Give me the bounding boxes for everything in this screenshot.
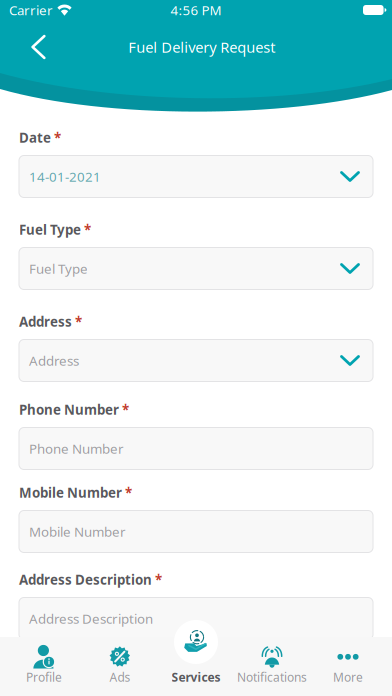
staticText: *: [54, 129, 61, 146]
button[interactable]: Ads: [82, 637, 158, 696]
staticText: Fuel Delivery Request: [128, 37, 275, 57]
staticText: Mobile Number: [19, 484, 122, 501]
staticText: 4:56 PM: [170, 1, 221, 19]
staticText: Phone Number: [29, 440, 124, 457]
button[interactable]: Address Description: [19, 597, 373, 639]
button[interactable]: Fuel Type: [19, 247, 373, 289]
staticText: Address Description: [29, 610, 153, 627]
button[interactable]: 14-01-2021: [19, 155, 373, 197]
staticText: *: [155, 571, 162, 588]
button[interactable]: Mobile Number: [19, 510, 373, 552]
staticText: Fuel Type: [29, 260, 88, 277]
button[interactable]: Notifications: [234, 637, 310, 696]
staticText: Mobile Number: [29, 523, 126, 540]
staticText: Services: [171, 669, 220, 685]
button[interactable]: Back: [0, 25, 58, 69]
staticText: Ads: [109, 669, 130, 685]
staticText: Date: [19, 129, 51, 146]
staticText: *: [125, 484, 132, 501]
button[interactable]: Services: [174, 620, 218, 664]
staticText: Address: [29, 352, 79, 369]
button[interactable]: Address: [19, 339, 373, 381]
staticText: Profile: [26, 669, 62, 685]
staticText: *: [75, 313, 82, 330]
staticText: Address Description: [19, 571, 152, 588]
button[interactable]: Services: [158, 637, 234, 696]
staticText: *: [84, 221, 91, 238]
button[interactable]: Profile: [6, 637, 82, 696]
staticText: Notifications: [237, 669, 307, 685]
staticText: More: [333, 669, 363, 685]
button[interactable]: More: [310, 637, 386, 696]
staticText: Carrier: [9, 1, 53, 19]
staticText: 14-01-2021: [29, 168, 101, 185]
staticText: Address: [19, 313, 72, 330]
staticText: Phone Number: [19, 401, 119, 418]
button[interactable]: Phone Number: [19, 427, 373, 469]
staticText: Fuel Type: [19, 221, 81, 238]
staticText: *: [122, 401, 129, 418]
